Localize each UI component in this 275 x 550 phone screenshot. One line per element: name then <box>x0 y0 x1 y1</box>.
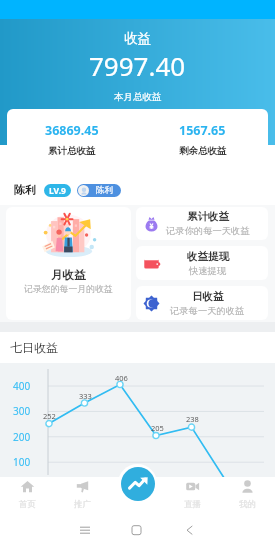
staticText: 238 <box>186 414 199 424</box>
button[interactable]: 我的 <box>220 477 275 514</box>
staticText: 1567.65 <box>179 122 226 139</box>
staticText: 252 <box>43 411 56 421</box>
staticText: LV.9 <box>49 185 66 197</box>
staticText: 收益提现 <box>187 250 229 263</box>
staticText: 我的 <box>239 499 256 510</box>
button[interactable]: 收益提现 <box>136 246 268 280</box>
staticText: 陈利 <box>96 185 113 196</box>
button[interactable]: 日收益 <box>136 286 268 320</box>
button[interactable]: 累计收益 <box>136 207 268 240</box>
staticText: 100 <box>13 455 31 469</box>
staticText: 陈利 <box>14 183 36 197</box>
staticText: 本月总收益 <box>114 91 162 103</box>
staticText: 7997.40 <box>89 48 186 83</box>
staticText: 剩余总收益 <box>179 145 227 157</box>
staticText: 406 <box>115 373 128 383</box>
staticText: 205 <box>151 423 164 433</box>
button[interactable]: 收益 <box>121 467 155 501</box>
staticText: 快速提现 <box>189 265 227 277</box>
button[interactable]: 直播 <box>165 477 220 514</box>
staticText: 累计收益 <box>187 210 229 223</box>
staticText: 记录每一天的收益 <box>170 305 245 317</box>
staticText: 七日收益 <box>10 340 58 355</box>
staticText: 36869.45 <box>45 122 99 139</box>
staticText: 400 <box>13 379 31 393</box>
staticText: 累计总收益 <box>48 145 96 157</box>
button[interactable]: 月收益 <box>6 207 131 320</box>
button[interactable]: 36869.45 <box>7 109 137 170</box>
staticText: 日收益 <box>192 290 224 303</box>
button[interactable]: 1567.65 <box>137 109 268 170</box>
staticText: 收益 <box>124 30 151 47</box>
staticText: 200 <box>13 430 31 444</box>
staticText: 首页 <box>19 499 36 510</box>
staticText: 直播 <box>184 499 201 510</box>
staticText: 333 <box>79 391 92 401</box>
button[interactable]: 推广 <box>55 477 110 514</box>
staticText: 月收益 <box>51 268 86 282</box>
staticText: 记录你的每一天收益 <box>166 225 250 237</box>
staticText: 300 <box>13 404 31 418</box>
staticText: 记录您的每一月的收益 <box>24 283 113 294</box>
button[interactable]: 首页 <box>0 477 55 514</box>
staticText: 推广 <box>74 499 91 510</box>
